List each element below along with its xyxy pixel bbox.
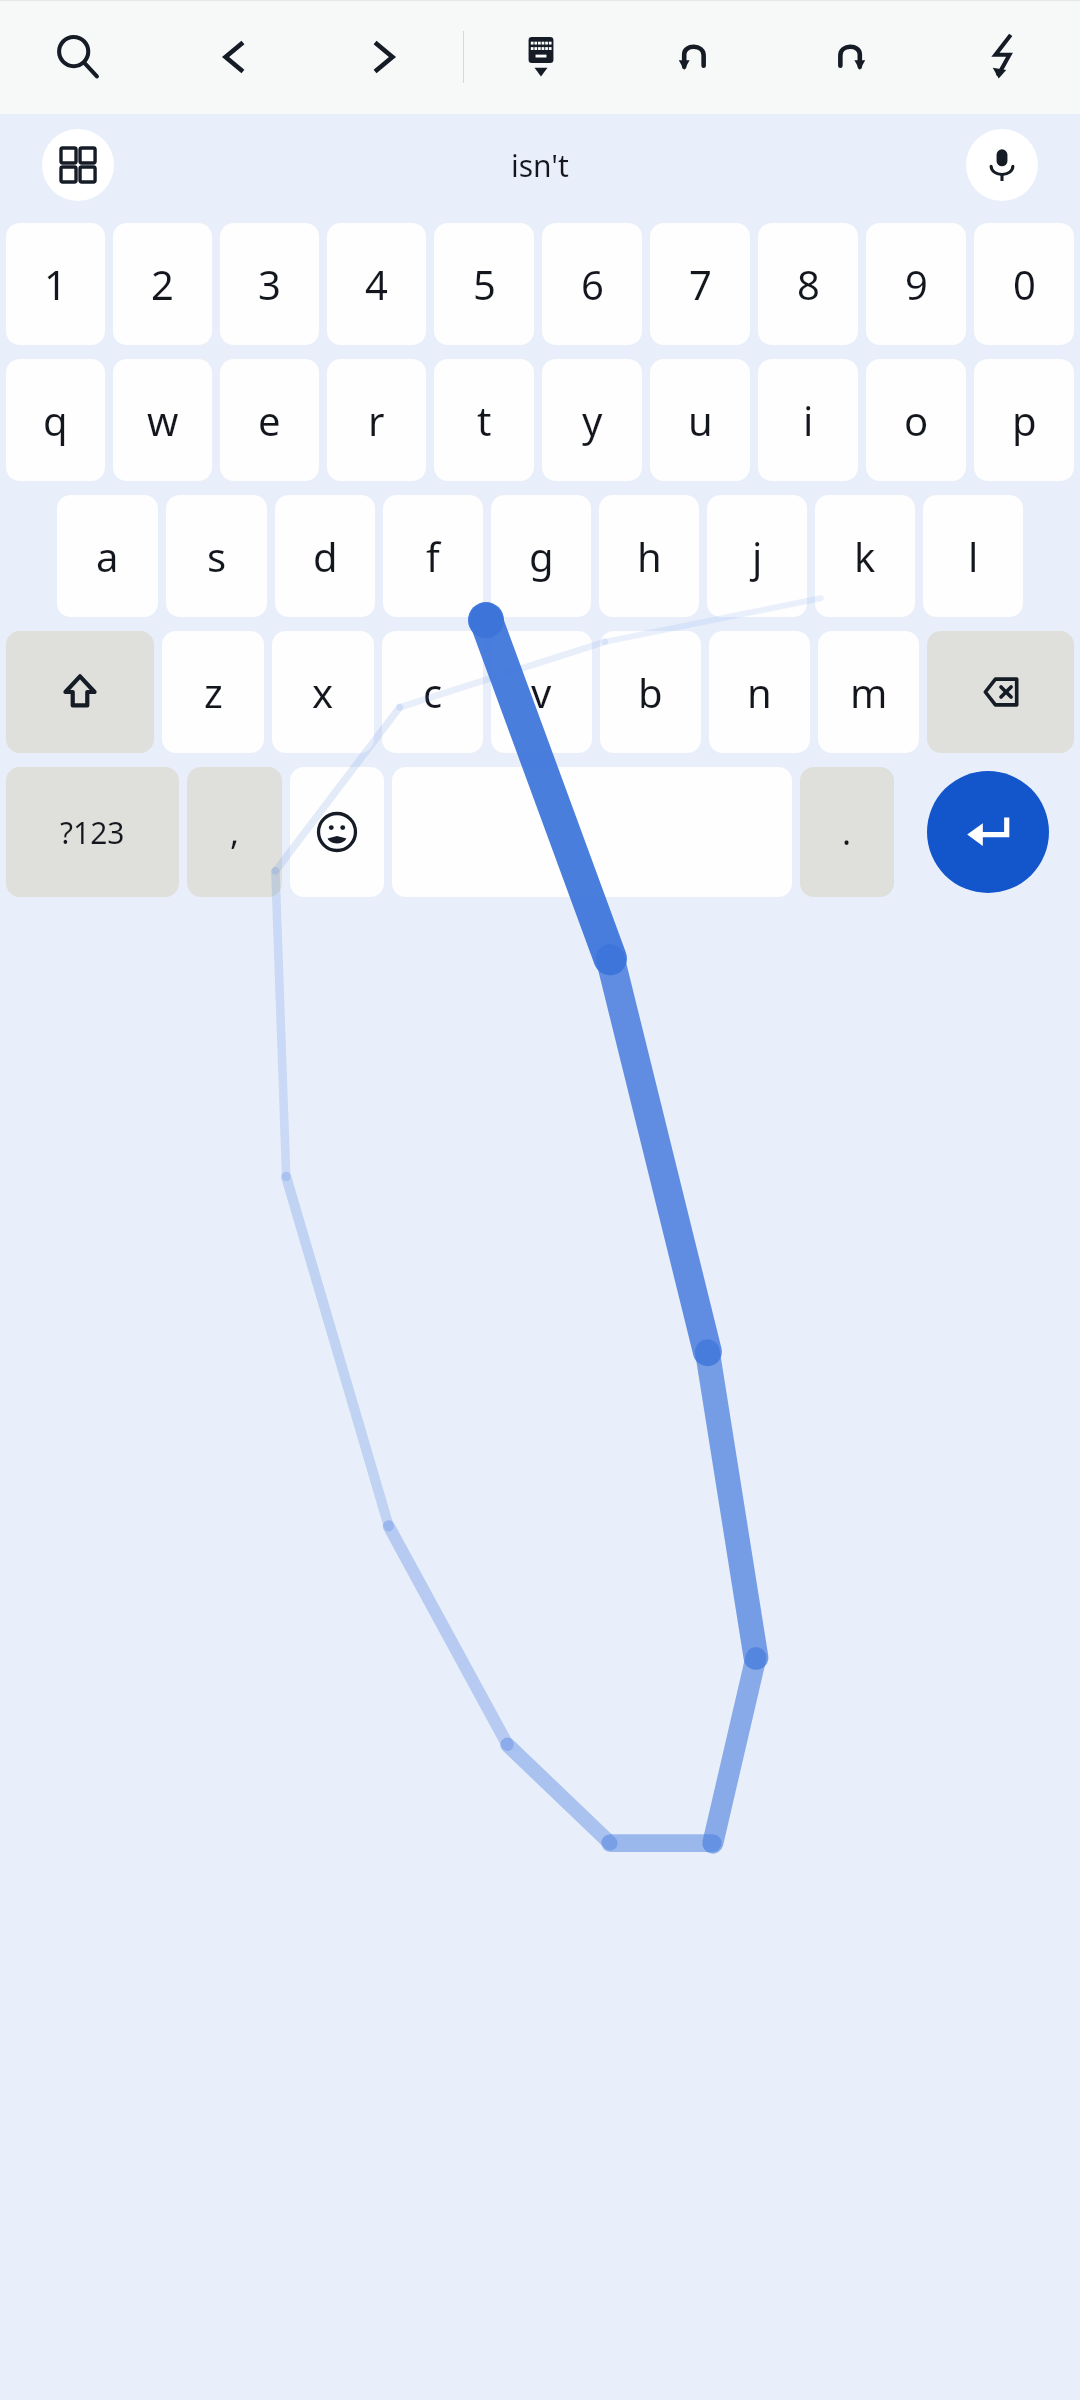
button[interactable]: 7 <box>650 223 750 345</box>
button[interactable]: c <box>382 631 483 753</box>
staticText: b <box>638 665 663 719</box>
staticText: ?123 <box>60 812 125 853</box>
staticText: 2 <box>151 257 174 311</box>
button[interactable]: b <box>600 631 701 753</box>
button[interactable]: x <box>272 631 374 753</box>
staticText: 3 <box>258 257 281 311</box>
staticText: t <box>477 393 492 447</box>
button[interactable]: w <box>113 359 212 481</box>
button[interactable]: Enter <box>927 771 1049 893</box>
button[interactable]: r <box>327 359 426 481</box>
button[interactable]: Hide keyboard <box>464 0 618 114</box>
button[interactable]: q <box>6 359 105 481</box>
button[interactable]: d <box>275 495 375 617</box>
button[interactable]: 1 <box>6 223 105 345</box>
button[interactable]: h <box>599 495 699 617</box>
button[interactable]: m <box>818 631 919 753</box>
button[interactable]: Emoji <box>290 767 384 897</box>
button[interactable]: p <box>974 359 1074 481</box>
staticText: e <box>258 393 281 447</box>
button[interactable]: . <box>800 767 894 897</box>
button[interactable]: Next <box>309 0 463 114</box>
staticText: m <box>850 665 888 719</box>
button[interactable]: 4 <box>327 223 426 345</box>
button[interactable]: s <box>166 495 267 617</box>
button[interactable]: 8 <box>758 223 858 345</box>
button[interactable]: , <box>187 767 282 897</box>
button[interactable]: Quick actions <box>926 0 1080 114</box>
button[interactable]: u <box>650 359 750 481</box>
staticText: 4 <box>365 257 388 311</box>
button[interactable]: j <box>707 495 807 617</box>
button[interactable]: ?123 <box>6 767 179 897</box>
staticText: . <box>842 809 852 855</box>
button[interactable]: Voice input <box>966 129 1038 201</box>
staticText: h <box>637 529 662 583</box>
button[interactable]: Space <box>392 767 792 897</box>
staticText: i <box>803 393 814 447</box>
staticText: c <box>423 665 443 719</box>
button[interactable]: i <box>758 359 858 481</box>
staticText: g <box>529 529 554 583</box>
button[interactable]: 3 <box>220 223 319 345</box>
button[interactable]: Search <box>0 0 155 114</box>
button[interactable]: 0 <box>974 223 1074 345</box>
button[interactable]: k <box>815 495 915 617</box>
staticText: isn't <box>511 145 569 186</box>
staticText: a <box>96 529 119 583</box>
button[interactable]: y <box>542 359 642 481</box>
staticText: , <box>230 809 240 855</box>
staticText: 6 <box>581 257 604 311</box>
staticText: p <box>1012 393 1037 447</box>
staticText: 9 <box>905 257 928 311</box>
staticText: v <box>531 665 552 719</box>
button[interactable]: Undo <box>618 0 772 114</box>
staticText: n <box>747 665 772 719</box>
button[interactable]: Redo <box>772 0 926 114</box>
button[interactable]: 5 <box>434 223 534 345</box>
button[interactable]: f <box>383 495 483 617</box>
staticText: o <box>904 393 929 447</box>
button[interactable]: Shift <box>6 631 154 753</box>
staticText: s <box>207 529 227 583</box>
button[interactable]: l <box>923 495 1023 617</box>
staticText: j <box>752 529 763 583</box>
button[interactable]: Previous <box>155 0 309 114</box>
staticText: y <box>582 393 603 447</box>
staticText: z <box>204 665 223 719</box>
button[interactable]: Clipboard <box>42 129 114 201</box>
button[interactable]: z <box>162 631 264 753</box>
staticText: u <box>688 393 713 447</box>
staticText: l <box>968 529 979 583</box>
button[interactable]: 6 <box>542 223 642 345</box>
button[interactable]: 2 <box>113 223 212 345</box>
staticText: d <box>313 529 338 583</box>
button[interactable]: a <box>57 495 158 617</box>
staticText: r <box>368 393 385 447</box>
staticText: 0 <box>1013 257 1036 311</box>
button[interactable]: g <box>491 495 591 617</box>
staticText: q <box>43 393 68 447</box>
button[interactable]: 9 <box>866 223 966 345</box>
staticText: f <box>426 529 440 583</box>
staticText: x <box>312 665 334 719</box>
staticText: 7 <box>689 257 712 311</box>
staticText: 5 <box>473 257 496 311</box>
button[interactable]: n <box>709 631 810 753</box>
staticText: k <box>854 529 876 583</box>
button[interactable]: Backspace <box>927 631 1074 753</box>
button[interactable]: e <box>220 359 319 481</box>
staticText: 1 <box>44 257 67 311</box>
button[interactable]: v <box>491 631 592 753</box>
button[interactable]: o <box>866 359 966 481</box>
staticText: w <box>147 393 179 447</box>
staticText: 8 <box>797 257 820 311</box>
button[interactable]: isn't <box>471 135 609 196</box>
button[interactable]: t <box>434 359 534 481</box>
